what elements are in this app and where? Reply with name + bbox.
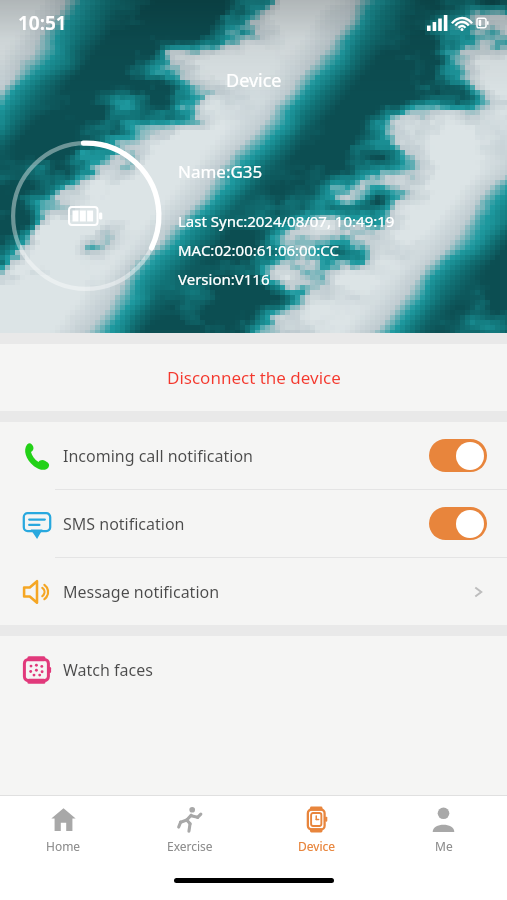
- staticText: Incoming call notification: [63, 445, 253, 467]
- staticText: SMS notification: [63, 513, 185, 535]
- button[interactable]: Toggle on: [429, 439, 487, 472]
- staticText: Device: [226, 68, 282, 93]
- staticText: Me: [435, 838, 453, 854]
- staticText: Home: [46, 838, 81, 854]
- staticText: Device: [298, 838, 336, 854]
- button[interactable]: Watch faces: [0, 636, 507, 703]
- staticText: Exercise: [167, 838, 213, 854]
- staticText: 10:51: [18, 10, 67, 36]
- staticText: MAC:02:00:61:06:00:CC: [178, 240, 339, 260]
- button[interactable]: Incoming call notification: [0, 422, 507, 489]
- staticText: Message notification: [63, 581, 220, 603]
- staticText: Version:V116: [178, 269, 270, 289]
- button[interactable]: Home: [0, 796, 126, 864]
- button[interactable]: Message notification: [0, 558, 507, 625]
- staticText: Name:G35: [178, 160, 263, 183]
- staticText: Disconnect the device: [167, 366, 341, 389]
- button[interactable]: Device: [253, 796, 380, 864]
- button[interactable]: Disconnect the device: [0, 344, 507, 411]
- button[interactable]: Me: [380, 796, 507, 864]
- button[interactable]: SMS notification: [0, 490, 507, 557]
- button[interactable]: Exercise: [126, 796, 253, 864]
- staticText: Watch faces: [63, 659, 153, 681]
- staticText: Last Sync:2024/08/07, 10:49:19: [178, 211, 395, 231]
- button[interactable]: Toggle on: [429, 507, 487, 540]
